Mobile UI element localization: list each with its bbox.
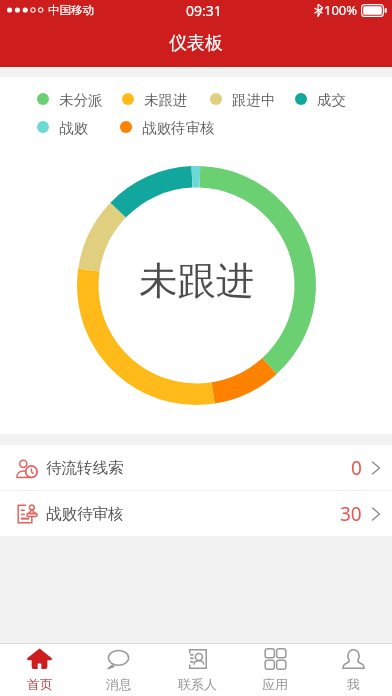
staticText: 未跟进 (139, 257, 255, 306)
button[interactable]: 待流转线索 (0, 445, 392, 490)
staticText: 09:31 (186, 1, 222, 20)
staticText: 成交 (317, 91, 346, 109)
button[interactable]: 战败待审核 (0, 491, 392, 536)
staticText: 战败待审核 (142, 119, 215, 137)
button[interactable]: 联系人 (158, 644, 236, 696)
staticText: 仪表板 (169, 32, 223, 55)
staticText: 中国移动 (48, 3, 94, 17)
staticText: 我 (347, 676, 360, 692)
staticText: 应用 (262, 676, 288, 692)
staticText: 100% (324, 1, 358, 19)
staticText: 待流转线索 (46, 458, 124, 478)
button[interactable]: 消息 (79, 644, 158, 696)
staticText: 首页 (27, 676, 53, 692)
button[interactable]: 首页 (0, 644, 79, 696)
staticText: 0 (351, 455, 362, 481)
button[interactable]: 我 (314, 644, 392, 696)
staticText: 跟进中 (232, 91, 276, 109)
staticText: 消息 (106, 676, 132, 692)
staticText: 战败 (59, 119, 88, 137)
staticText: 战败待审核 (46, 504, 124, 524)
staticText: 30 (340, 501, 362, 527)
staticText: 联系人 (178, 676, 217, 692)
staticText: 未分派 (59, 91, 103, 109)
staticText: 未跟进 (144, 91, 188, 109)
button[interactable]: 应用 (236, 644, 314, 696)
